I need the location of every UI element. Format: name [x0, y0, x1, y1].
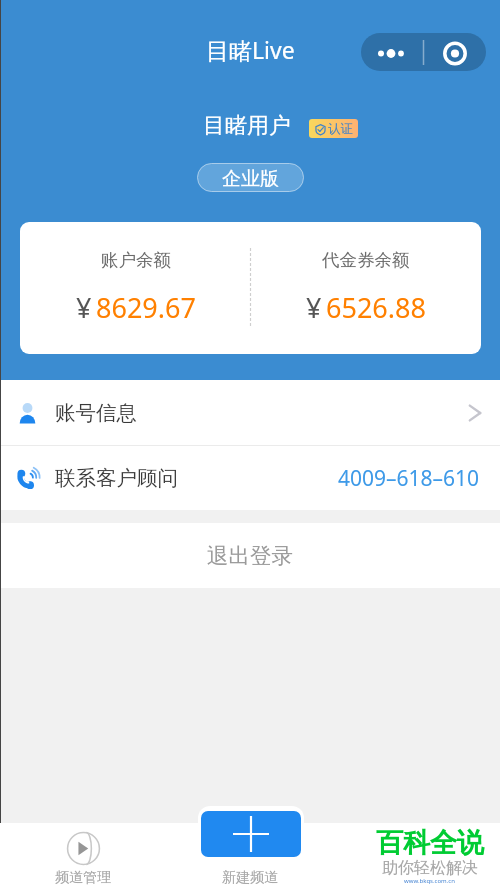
staticText: 新建频道: [222, 869, 278, 887]
staticText: 认证: [328, 121, 353, 137]
staticText: 助你轻松解决: [382, 858, 478, 878]
staticText: 代金券余额: [322, 249, 410, 271]
staticText: 目睹Live: [206, 34, 295, 65]
button[interactable]: More options and close: [361, 33, 486, 71]
button[interactable]: 联系客户顾问: [0, 446, 500, 510]
staticText: 8629.67: [96, 289, 196, 326]
staticText: 4009–618–610: [338, 464, 480, 493]
button[interactable]: 账号信息: [0, 380, 500, 445]
button[interactable]: 我的: [333, 823, 500, 889]
staticText: ¥: [76, 289, 92, 326]
staticText: 目睹用户: [203, 112, 291, 140]
staticText: 频道管理: [55, 869, 111, 887]
staticText: 账户余额: [101, 249, 171, 271]
button[interactable]: 企业版: [197, 163, 304, 192]
button[interactable]: 退出登录: [0, 523, 500, 588]
staticText: 账号信息: [55, 400, 137, 426]
button[interactable]: New channel: [201, 811, 301, 857]
staticText: 百科全说: [376, 826, 484, 860]
staticText: 退出登录: [207, 542, 293, 569]
staticText: 联系客户顾问: [55, 465, 178, 491]
staticText: 我的: [403, 869, 431, 887]
staticText: www.bkqs.com.cn: [404, 877, 455, 885]
button[interactable]: 新建频道: [166, 823, 333, 889]
staticText: 6526.88: [326, 289, 426, 326]
button[interactable]: 频道管理: [0, 823, 166, 889]
staticText: 企业版: [222, 167, 279, 191]
staticText: ¥: [306, 289, 322, 326]
